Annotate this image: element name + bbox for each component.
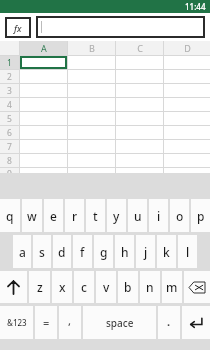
button[interactable]: m <box>162 271 182 303</box>
button[interactable]: f <box>73 235 92 268</box>
button[interactable]: Enter <box>182 306 210 339</box>
button[interactable]: b <box>118 271 138 303</box>
button[interactable]: 1 <box>0 56 19 69</box>
button[interactable]: 6 <box>0 126 19 139</box>
button[interactable]: o <box>170 199 189 232</box>
staticText: m <box>166 279 178 295</box>
staticText: j <box>144 244 148 260</box>
button[interactable]: 2 <box>0 70 19 83</box>
staticText: f <box>80 244 85 260</box>
staticText: b <box>124 279 132 295</box>
button[interactable]: t <box>86 199 105 232</box>
staticText: r <box>72 208 78 224</box>
staticText: 6 <box>7 127 12 139</box>
button[interactable]: space <box>83 306 156 339</box>
button[interactable]: Backspace <box>184 271 210 303</box>
button[interactable]: 3 <box>0 84 19 97</box>
button[interactable]: s <box>33 235 51 268</box>
button[interactable]: z <box>29 271 50 303</box>
staticText: l <box>186 244 190 260</box>
button[interactable]: A <box>20 41 67 55</box>
button[interactable]: c <box>74 271 94 303</box>
button[interactable]: C <box>116 41 163 55</box>
staticText: 4 <box>7 99 12 111</box>
staticText: h <box>121 244 129 260</box>
button[interactable]: . <box>158 306 180 339</box>
button[interactable]: 9 <box>0 168 19 173</box>
button[interactable] <box>20 56 67 69</box>
button[interactable]: e <box>44 199 63 232</box>
button[interactable]: d <box>53 235 71 268</box>
button[interactable]: , <box>59 306 81 339</box>
button[interactable]: p <box>191 199 210 232</box>
staticText: 5 <box>7 113 12 125</box>
button[interactable]: Shift <box>0 271 27 303</box>
button[interactable]: k <box>157 235 176 268</box>
button[interactable]: x <box>52 271 72 303</box>
button[interactable]: 8 <box>0 154 19 167</box>
button[interactable]: 4 <box>0 98 19 111</box>
button[interactable]: Formula input <box>36 16 205 38</box>
button[interactable]: n <box>140 271 160 303</box>
button[interactable]: j <box>136 235 155 268</box>
staticText: t <box>93 208 98 224</box>
staticText: k <box>163 244 170 260</box>
button[interactable]: q <box>0 199 20 232</box>
button[interactable]: B <box>68 41 115 55</box>
button[interactable]: h <box>115 235 134 268</box>
button[interactable]: g <box>94 235 113 268</box>
button[interactable]: u <box>128 199 147 232</box>
staticText: e <box>50 208 57 224</box>
button[interactable]: 5 <box>0 112 19 125</box>
button[interactable]: = <box>35 306 57 339</box>
button[interactable]: l <box>178 235 197 268</box>
button[interactable]: y <box>107 199 126 232</box>
button[interactable]: a <box>13 235 31 268</box>
staticText: d <box>58 244 66 260</box>
button[interactable]: Insert function <box>5 17 31 38</box>
button[interactable]: &123 <box>0 306 33 339</box>
button[interactable]: r <box>65 199 84 232</box>
button[interactable]: i <box>149 199 168 232</box>
button[interactable]: w <box>22 199 42 232</box>
staticText: q <box>6 208 14 224</box>
button[interactable]: D <box>164 41 210 55</box>
button[interactable]: 7 <box>0 140 19 153</box>
button[interactable]: v <box>96 271 116 303</box>
